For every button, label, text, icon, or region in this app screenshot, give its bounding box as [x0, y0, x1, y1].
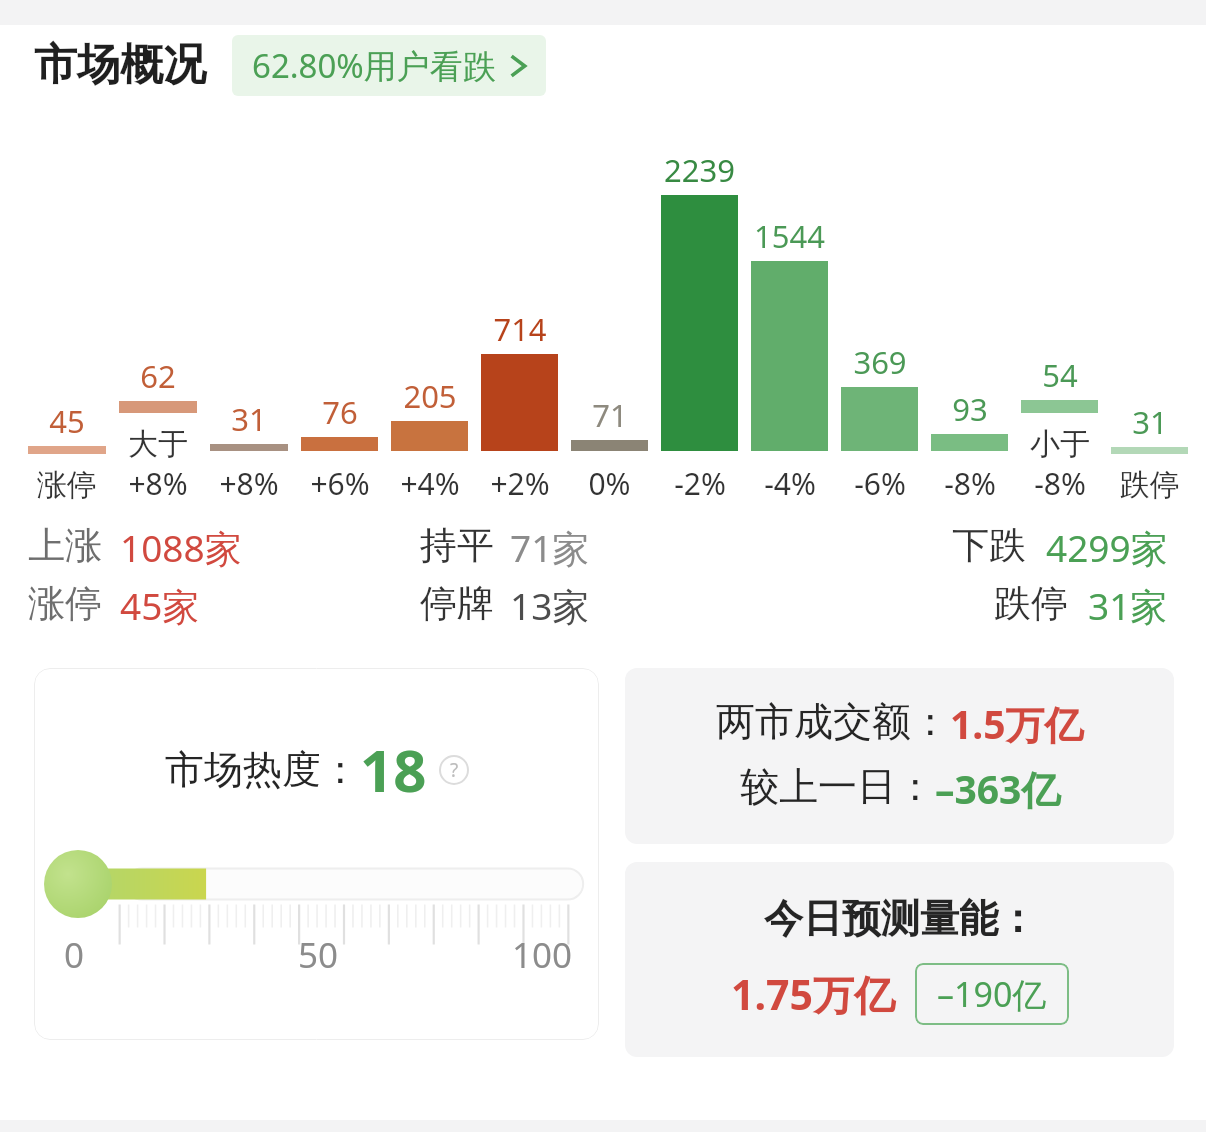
staticText: 71家 — [510, 522, 590, 573]
staticText: 76 — [322, 391, 358, 433]
staticText: -8% — [1034, 463, 1086, 504]
staticText: 31 — [231, 398, 267, 440]
staticText: 0% — [588, 463, 631, 504]
staticText: 18 — [360, 730, 427, 809]
staticText: 今日预测量能： — [764, 894, 1037, 943]
staticText: 369 — [853, 341, 907, 383]
staticText: -2% — [674, 463, 726, 504]
staticText: 93 — [952, 388, 988, 430]
staticText: 1.75万亿 — [731, 966, 895, 1022]
staticText: +2% — [490, 463, 550, 504]
staticText: 205 — [403, 375, 457, 417]
staticText: 持平 — [420, 522, 494, 569]
staticText: +4% — [400, 463, 460, 504]
staticText: 下跌 — [952, 522, 1026, 569]
staticText: 小于 — [1030, 425, 1090, 463]
staticText: 涨停 — [28, 580, 102, 627]
staticText: –190亿 — [937, 971, 1047, 1017]
staticText: 上涨 — [28, 522, 102, 569]
staticText: 停牌 — [420, 580, 494, 627]
staticText: 62.80%用户看跌 — [252, 43, 496, 88]
button[interactable]: 今日预测量能： — [625, 862, 1174, 1057]
staticText: 13家 — [510, 580, 590, 631]
staticText: +8% — [219, 463, 279, 504]
staticText: 涨停 — [37, 466, 97, 504]
staticText: 31 — [1132, 401, 1168, 443]
staticText: 市场热度： — [165, 745, 360, 794]
button[interactable]: 两市成交额： — [625, 668, 1174, 844]
staticText: 4299家 — [1046, 522, 1168, 573]
staticText: -8% — [944, 463, 996, 504]
staticText: -4% — [764, 463, 816, 504]
staticText: 1.5万亿 — [950, 697, 1084, 750]
staticText: 45家 — [120, 580, 200, 631]
staticText: 0 — [64, 931, 85, 979]
staticText: 两市成交额： — [716, 697, 950, 746]
staticText: 跌停 — [994, 580, 1068, 627]
staticText: 45 — [49, 400, 85, 442]
button[interactable]: 市场热度： — [34, 668, 599, 1040]
staticText: 100 — [512, 931, 573, 979]
staticText: +6% — [310, 463, 370, 504]
staticText: 2239 — [664, 149, 735, 191]
staticText: ? — [450, 757, 459, 783]
staticText: 31家 — [1088, 580, 1168, 631]
button[interactable]: –190亿 — [915, 963, 1069, 1025]
staticText: –363亿 — [935, 762, 1061, 815]
button[interactable]: 62.80%用户看跌 — [232, 35, 546, 96]
staticText: 大于 — [128, 425, 188, 463]
staticText: 71 — [592, 394, 628, 436]
staticText: 跌停 — [1120, 466, 1180, 504]
staticText: +8% — [128, 463, 188, 504]
staticText: 50 — [298, 931, 339, 979]
staticText: 市场概况 — [34, 38, 206, 92]
staticText: 714 — [493, 308, 547, 350]
staticText: 54 — [1042, 354, 1078, 396]
staticText: -6% — [854, 463, 906, 504]
staticText: 1088家 — [120, 522, 242, 573]
staticText: 1544 — [754, 215, 825, 257]
staticText: 较上一日： — [740, 762, 935, 811]
button[interactable]: 市场热度说明 — [439, 755, 469, 785]
staticText: 62 — [140, 355, 176, 397]
